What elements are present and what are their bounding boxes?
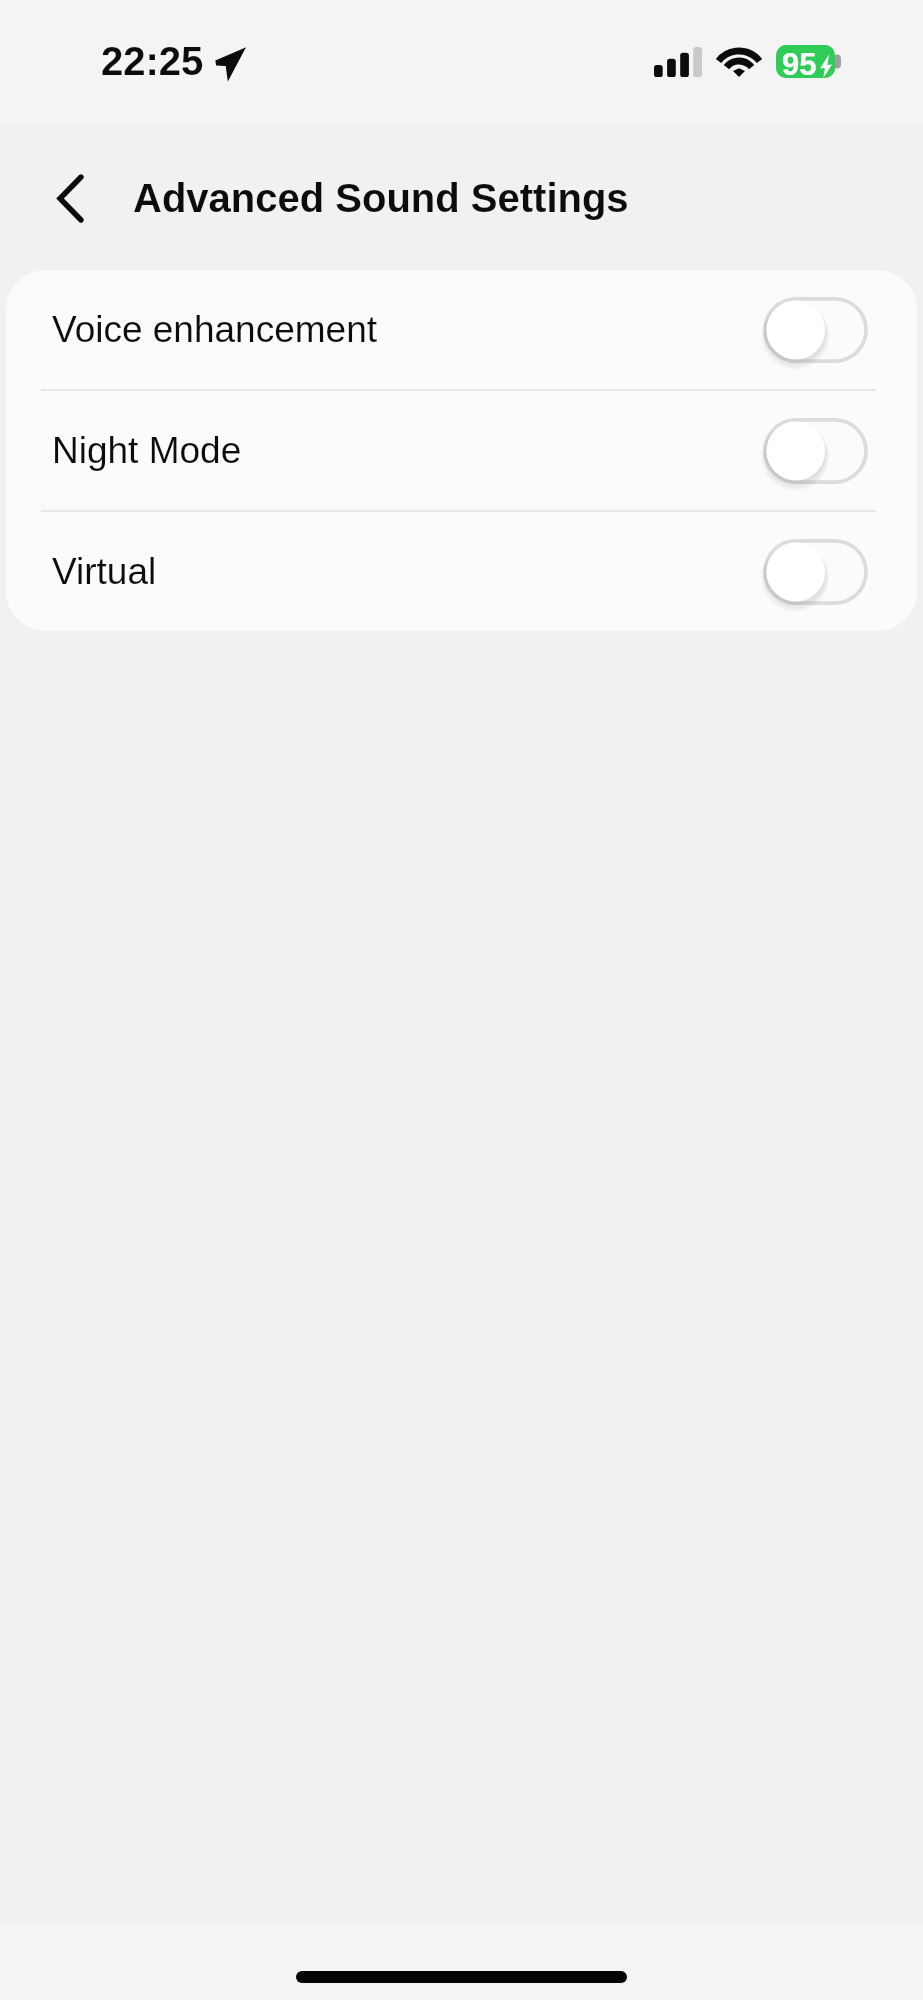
button[interactable]: Virtual bbox=[6, 512, 917, 631]
staticText: Virtual bbox=[52, 551, 157, 592]
button[interactable]: Night Mode, off bbox=[763, 418, 868, 484]
staticText: Voice enhancement bbox=[52, 309, 378, 350]
staticText: 95 bbox=[782, 47, 817, 80]
button[interactable]: Voice enhancement bbox=[6, 270, 917, 389]
button[interactable]: Virtual, off bbox=[763, 539, 868, 605]
staticText: 22:25 bbox=[101, 38, 204, 84]
staticText: Advanced Sound Settings bbox=[133, 176, 629, 221]
staticText: Night Mode bbox=[52, 430, 242, 471]
button[interactable]: Night Mode bbox=[6, 391, 917, 510]
button[interactable]: Back bbox=[42, 170, 98, 226]
button[interactable]: Voice enhancement, off bbox=[763, 297, 868, 363]
